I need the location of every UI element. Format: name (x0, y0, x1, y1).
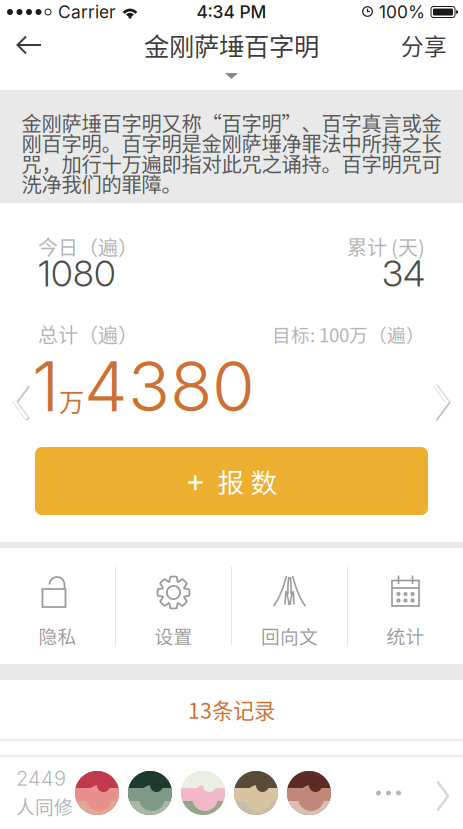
staticText: 回向文 (261, 622, 318, 649)
staticText: 1 (32, 344, 59, 428)
staticText: 隐私 (38, 622, 76, 649)
staticText: 4:34 PM (196, 1, 266, 22)
staticText: 今日（遍） (38, 232, 138, 261)
staticText: 报 数 (217, 462, 277, 500)
staticText: 统计 (386, 622, 424, 649)
button[interactable]: 隐私 (0, 548, 115, 664)
staticText: 13条记录 (188, 694, 275, 725)
staticText: 金刚萨埵百字明又称“百字明”、百字真言或金刚百字明。百字明是金刚萨埵净罪法中所持… (21, 108, 441, 198)
staticText: 4380 (84, 344, 255, 428)
staticText: 万 (59, 382, 84, 419)
staticText: 100% (379, 1, 425, 22)
staticText: 总计（遍） (38, 319, 138, 348)
staticText: 目标: 100万（遍） (272, 320, 425, 347)
staticText: 金刚萨埵百字明 (144, 27, 319, 63)
staticText: 分享 (401, 29, 447, 61)
button[interactable]: 统计 (348, 548, 463, 664)
button[interactable]: 13条记录 (0, 680, 463, 739)
staticText: 34 (382, 252, 425, 295)
staticText: 累计 (天) (347, 232, 425, 261)
button[interactable]: + (35, 447, 428, 515)
staticText: + (185, 462, 205, 499)
button[interactable]: 回向文 (232, 548, 347, 664)
button[interactable]: 下一个 (431, 383, 463, 428)
button[interactable]: 上一个 (0, 383, 32, 428)
staticText: 2449 (16, 766, 66, 791)
staticText: 人同修 (16, 793, 73, 820)
button[interactable]: 设置 (116, 548, 231, 664)
staticText: Carrier (58, 1, 116, 22)
button[interactable]: 返回 (0, 24, 60, 66)
staticText: 设置 (154, 622, 192, 649)
staticText: 1080 (38, 252, 116, 295)
button[interactable]: 分享 (385, 24, 463, 66)
button[interactable]: 2449 (0, 757, 463, 829)
